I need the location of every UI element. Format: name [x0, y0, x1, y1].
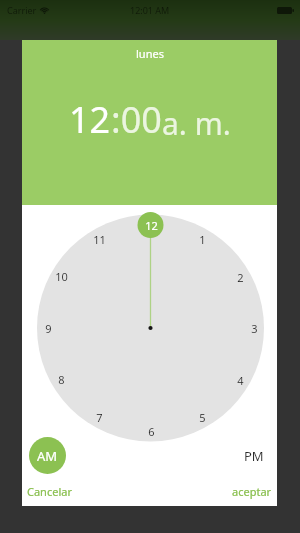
button[interactable]: :00 [111, 95, 162, 144]
staticText: 10 [55, 269, 68, 284]
staticText: 3 [251, 321, 258, 336]
staticText: AM [37, 447, 58, 465]
staticText: 1 [199, 232, 206, 247]
staticText: 8 [58, 372, 65, 387]
button[interactable]: lunes [136, 46, 164, 61]
button[interactable]: 12 [69, 95, 111, 144]
button[interactable]: Cancelar [27, 484, 72, 499]
staticText: 4 [237, 373, 244, 388]
staticText: 12 [145, 218, 158, 233]
staticText: 12:01 AM [130, 4, 170, 16]
staticText: PM [244, 447, 264, 465]
staticText: 9 [45, 321, 52, 336]
staticText: 11 [93, 232, 106, 247]
staticText: 6 [148, 424, 155, 439]
button[interactable]: AM [29, 437, 66, 474]
staticText: aceptar [232, 484, 272, 499]
button[interactable]: PM [235, 437, 272, 474]
staticText: Cancelar [27, 484, 72, 499]
staticText: Carrier [7, 4, 37, 16]
button[interactable]: aceptar [232, 484, 272, 499]
staticText: 2 [237, 270, 244, 285]
button[interactable]: a. m. [162, 103, 231, 144]
staticText: 5 [199, 410, 206, 425]
staticText: 7 [96, 410, 103, 425]
